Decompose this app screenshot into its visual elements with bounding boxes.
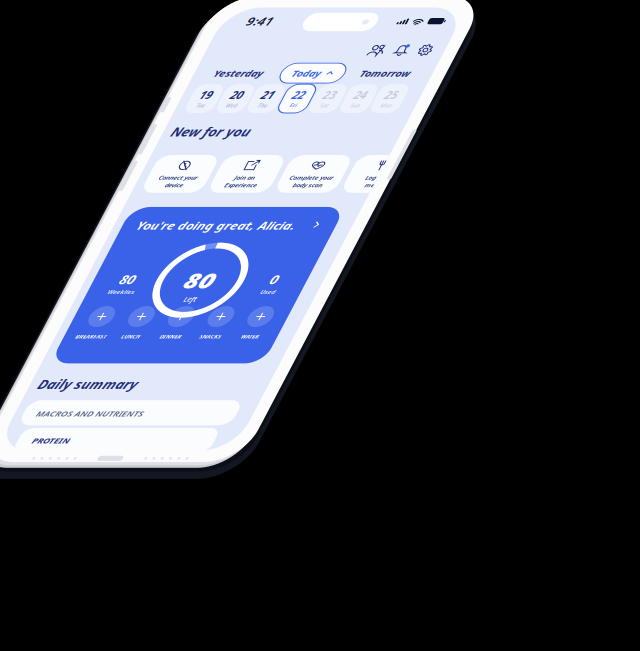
button[interactable]: 25: [303, 0, 350, 55]
staticText: 80: [150, 112, 198, 167]
staticText: Left: [164, 168, 185, 184]
staticText: 23: [215, 9, 235, 34]
staticText: Experience: [132, 50, 185, 64]
button[interactable]: SNACKS: [207, 189, 272, 261]
staticText: DINNER: [157, 241, 192, 253]
button[interactable]: LUNCH: [77, 189, 142, 261]
staticText: You're doing great, Alicia.: [24, 21, 283, 49]
button[interactable]: WATER: [272, 189, 337, 261]
staticText: LUNCH: [94, 241, 125, 253]
staticText: 25: [316, 9, 336, 34]
staticText: SNACKS: [222, 241, 257, 253]
button[interactable]: 23: [202, 0, 249, 55]
button[interactable]: Complete your: [218, 0, 318, 72]
button[interactable]: 22: [151, 0, 198, 55]
staticText: Log your: [356, 36, 397, 50]
button[interactable]: Join an: [109, 0, 209, 72]
staticText: meals: [362, 50, 392, 64]
staticText: Used: [283, 154, 307, 169]
button[interactable]: DINNER: [142, 189, 207, 261]
button[interactable]: Log your: [327, 0, 427, 72]
button[interactable]: 24: [252, 0, 299, 55]
staticText: 24: [266, 9, 286, 34]
